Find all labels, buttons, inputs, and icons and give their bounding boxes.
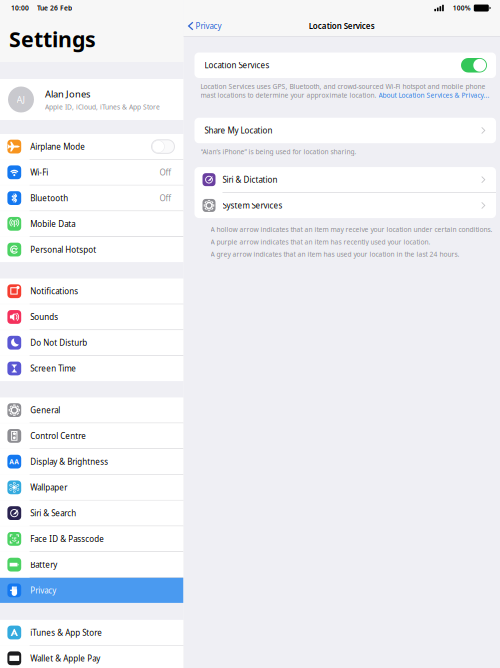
staticText: Bluetooth bbox=[30, 193, 68, 203]
staticText: Location Services bbox=[309, 21, 375, 31]
button[interactable]: General bbox=[0, 397, 183, 423]
button[interactable]: Wallpaper bbox=[0, 475, 183, 500]
staticText: Display & Brightness bbox=[30, 456, 108, 467]
button[interactable]: Personal Hotspot bbox=[0, 237, 183, 262]
staticText: Off bbox=[159, 193, 171, 203]
staticText: Screen Time bbox=[30, 363, 76, 374]
staticText: Mobile Data bbox=[30, 218, 75, 229]
staticText: System Services bbox=[222, 200, 282, 211]
staticText: Siri & Dictation bbox=[222, 174, 277, 185]
button[interactable]: Do Not Disturb bbox=[0, 330, 183, 355]
button[interactable]: Control Centre bbox=[0, 423, 183, 448]
staticText: A hollow arrow indicates that an item ma… bbox=[211, 225, 493, 234]
staticText: Personal Hotspot bbox=[30, 244, 96, 255]
button[interactable]: Display and Brightness bbox=[0, 449, 183, 474]
staticText: Tue 26 Feb bbox=[37, 4, 72, 12]
button[interactable]: Privacy bbox=[183, 16, 226, 35]
staticText: Siri & Search bbox=[30, 508, 76, 518]
staticText: AJ bbox=[16, 93, 25, 106]
staticText: Privacy bbox=[195, 21, 221, 31]
staticText: 100% bbox=[453, 4, 471, 12]
button[interactable]: Battery bbox=[0, 552, 183, 577]
button[interactable]: System Services bbox=[194, 193, 496, 218]
button[interactable]: Notifications bbox=[0, 279, 183, 304]
button[interactable]: Siri & Dictation bbox=[194, 167, 496, 192]
staticText: Apple ID, iCloud, iTunes & App Store bbox=[45, 102, 160, 111]
staticText: Off bbox=[159, 167, 171, 178]
staticText: “Alan’s iPhone” is being used for locati… bbox=[200, 147, 356, 156]
staticText: Notifications bbox=[30, 286, 78, 296]
button[interactable]: Airplane Mode bbox=[0, 134, 183, 159]
staticText: Control Centre bbox=[30, 431, 86, 441]
staticText: Settings bbox=[9, 25, 96, 53]
staticText: Wallet & Apple Pay bbox=[30, 653, 100, 664]
staticText: Wi-Fi bbox=[30, 167, 48, 178]
button[interactable]: Bluetooth bbox=[0, 185, 183, 211]
button[interactable]: Wi-Fi bbox=[0, 160, 183, 185]
staticText: Airplane Mode bbox=[30, 141, 85, 152]
staticText: iTunes & App Store bbox=[30, 627, 102, 638]
button[interactable]: Privacy bbox=[0, 578, 183, 603]
button[interactable]: Share My Location bbox=[194, 118, 496, 143]
staticText: A purple arrow indicates that an item ha… bbox=[211, 237, 431, 246]
button[interactable]: Face ID & Passcode bbox=[0, 526, 183, 551]
button[interactable]: Siri & Search bbox=[0, 500, 183, 526]
staticText: A grey arrow indicates that an item has … bbox=[211, 250, 460, 259]
staticText: Location Services bbox=[204, 60, 269, 70]
staticText: Alan Jones bbox=[45, 88, 90, 100]
button[interactable]: AJ bbox=[0, 79, 183, 120]
button[interactable]: iTunes & App Store bbox=[0, 620, 183, 645]
button[interactable]: Sounds bbox=[0, 304, 183, 329]
staticText: Do Not Disturb bbox=[30, 337, 87, 348]
staticText: Battery bbox=[30, 559, 57, 570]
staticText: Face ID & Passcode bbox=[30, 534, 104, 544]
staticText: Location Services uses GPS, Bluetooth, a… bbox=[200, 82, 489, 100]
button[interactable]: Wallet & Apple Pay bbox=[0, 646, 183, 668]
button[interactable]: Location Services bbox=[194, 52, 496, 78]
staticText: 10:00 bbox=[11, 4, 29, 12]
staticText: Privacy bbox=[30, 585, 56, 596]
staticText: AA bbox=[9, 457, 19, 466]
staticText: Share My Location bbox=[204, 125, 272, 136]
staticText: General bbox=[30, 405, 60, 415]
button[interactable]: Screen Time bbox=[0, 356, 183, 381]
button[interactable]: Mobile Data bbox=[0, 211, 183, 236]
staticText: Wallpaper bbox=[30, 482, 67, 493]
staticText: Sounds bbox=[30, 312, 58, 322]
